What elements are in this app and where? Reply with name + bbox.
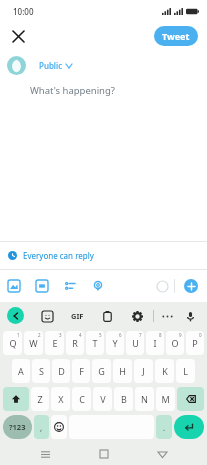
- button[interactable]: Enter: [174, 415, 204, 439]
- staticText: N: [141, 393, 148, 405]
- button[interactable]: J: [134, 359, 153, 383]
- button[interactable]: B: [114, 387, 133, 411]
- staticText: 6: [119, 332, 122, 338]
- button[interactable]: Back: [148, 443, 176, 465]
- staticText: Public: [39, 60, 63, 71]
- button[interactable]: GIF: [67, 304, 87, 328]
- button[interactable]: E: [45, 331, 64, 355]
- staticText: F: [79, 365, 84, 377]
- button[interactable]: Everyone can reply: [0, 242, 207, 269]
- staticText: 1: [17, 332, 20, 338]
- button[interactable]: Add location: [84, 270, 112, 302]
- button[interactable]: Stickers: [37, 306, 57, 326]
- staticText: I: [153, 337, 157, 349]
- button[interactable]: S: [32, 359, 50, 383]
- staticText: 0: [199, 332, 202, 338]
- button[interactable]: C: [72, 387, 91, 411]
- button[interactable]: Tweet: [154, 26, 198, 46]
- button[interactable]: L: [176, 359, 195, 383]
- staticText: R: [72, 337, 78, 349]
- button[interactable]: Emoji: [51, 415, 67, 439]
- button[interactable]: Add GIF: [28, 270, 56, 302]
- staticText: 2: [38, 332, 41, 338]
- staticText: L: [183, 365, 188, 377]
- staticText: 3: [59, 332, 62, 338]
- staticText: U: [132, 337, 139, 349]
- button[interactable]: H: [113, 359, 132, 383]
- button[interactable]: W: [24, 331, 43, 355]
- staticText: O: [171, 337, 179, 349]
- button[interactable]: T: [86, 331, 104, 355]
- staticText: Q: [9, 337, 17, 349]
- button[interactable]: F: [72, 359, 90, 383]
- button[interactable]: Z: [31, 387, 49, 411]
- staticText: B: [121, 393, 127, 405]
- button[interactable]: R: [66, 331, 84, 355]
- button[interactable]: Add tweet: [184, 279, 198, 293]
- button[interactable]: G: [92, 359, 111, 383]
- button[interactable]: Add poll: [56, 270, 84, 302]
- staticText: .: [163, 422, 166, 433]
- staticText: 7: [139, 332, 142, 338]
- staticText: 10:00: [13, 6, 34, 17]
- staticText: Y: [112, 337, 118, 349]
- staticText: W: [29, 337, 38, 349]
- button[interactable]: U: [126, 331, 144, 355]
- staticText: E: [52, 337, 58, 349]
- button[interactable]: Y: [106, 331, 124, 355]
- button[interactable]: K: [155, 359, 174, 383]
- staticText: C: [79, 393, 85, 405]
- button[interactable]: ?123: [3, 415, 32, 439]
- staticText: 8: [159, 332, 162, 338]
- button[interactable]: Close: [6, 24, 30, 48]
- button[interactable]: Recents: [31, 443, 59, 465]
- staticText: D: [58, 365, 65, 377]
- button[interactable]: Shift: [3, 387, 29, 411]
- button[interactable]: Profile: [7, 56, 26, 75]
- staticText: 4: [79, 332, 82, 338]
- button[interactable]: N: [135, 387, 154, 411]
- staticText: J: [142, 365, 145, 377]
- staticText: P: [192, 337, 198, 349]
- button[interactable]: M: [156, 387, 175, 411]
- button[interactable]: Add photo: [0, 270, 28, 302]
- button[interactable]: Home: [90, 443, 118, 465]
- staticText: ?123: [9, 422, 26, 432]
- staticText: T: [92, 337, 98, 349]
- staticText: ,: [40, 422, 43, 433]
- staticText: A: [18, 365, 24, 377]
- staticText: GIF: [71, 311, 84, 321]
- staticText: 9: [179, 332, 182, 338]
- button[interactable]: I: [146, 331, 164, 355]
- staticText: 5: [99, 332, 102, 338]
- button[interactable]: ,: [34, 415, 49, 439]
- button[interactable]: V: [93, 387, 112, 411]
- staticText: What's happening?: [30, 84, 115, 97]
- button[interactable]: More options: [157, 306, 177, 326]
- staticText: G: [98, 365, 105, 377]
- button[interactable]: A: [12, 359, 30, 383]
- button[interactable]: Settings: [127, 306, 147, 326]
- staticText: X: [58, 393, 64, 405]
- staticText: S: [39, 365, 44, 377]
- button[interactable]: Q: [3, 331, 22, 355]
- staticText: K: [162, 365, 168, 377]
- button[interactable]: P: [186, 331, 204, 355]
- staticText: M: [161, 393, 170, 405]
- button[interactable]: Voice input: [180, 306, 200, 326]
- staticText: V: [100, 393, 106, 405]
- button[interactable]: .: [156, 415, 172, 439]
- button[interactable]: Public: [32, 58, 79, 73]
- button[interactable]: D: [52, 359, 70, 383]
- button[interactable]: Clipboard: [97, 306, 117, 326]
- button[interactable]: Back: [7, 307, 24, 324]
- button[interactable]: X: [51, 387, 70, 411]
- staticText: Everyone can reply: [23, 250, 94, 261]
- button[interactable]: Backspace: [177, 387, 204, 411]
- staticText: Z: [37, 393, 43, 405]
- button[interactable]: O: [166, 331, 184, 355]
- button[interactable]: Character count: [150, 274, 174, 298]
- staticText: Tweet: [162, 30, 190, 42]
- staticText: H: [119, 365, 126, 377]
